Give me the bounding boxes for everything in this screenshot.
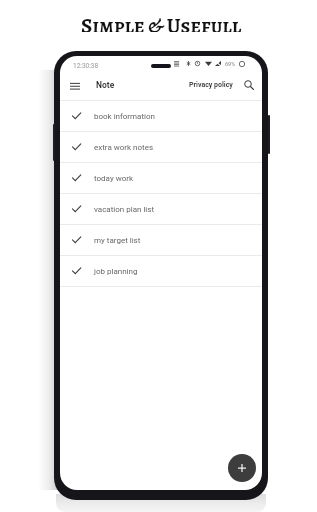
staticText: job planning xyxy=(94,267,138,276)
staticText: 12:30:38 xyxy=(73,62,99,70)
button[interactable]: book information xyxy=(60,101,262,131)
button[interactable]: Add note xyxy=(228,454,256,482)
staticText: Simple & Usefull xyxy=(81,12,242,32)
button[interactable]: vacation plan list xyxy=(60,194,262,224)
button[interactable]: Privacy policy xyxy=(187,81,235,89)
staticText: vacation plan list xyxy=(94,205,155,214)
staticText: today work xyxy=(94,174,134,183)
button[interactable]: my target list xyxy=(60,225,262,255)
staticText: Note xyxy=(96,80,115,90)
staticText: extra work notes xyxy=(94,143,154,152)
button[interactable]: Navigation menu xyxy=(64,75,85,96)
staticText: my target list xyxy=(94,236,141,245)
staticText: book information xyxy=(94,112,155,121)
button[interactable]: Search xyxy=(240,76,258,94)
button[interactable]: job planning xyxy=(60,256,262,286)
button[interactable]: today work xyxy=(60,163,262,193)
staticText: 69% xyxy=(225,61,236,67)
button[interactable]: extra work notes xyxy=(60,132,262,162)
